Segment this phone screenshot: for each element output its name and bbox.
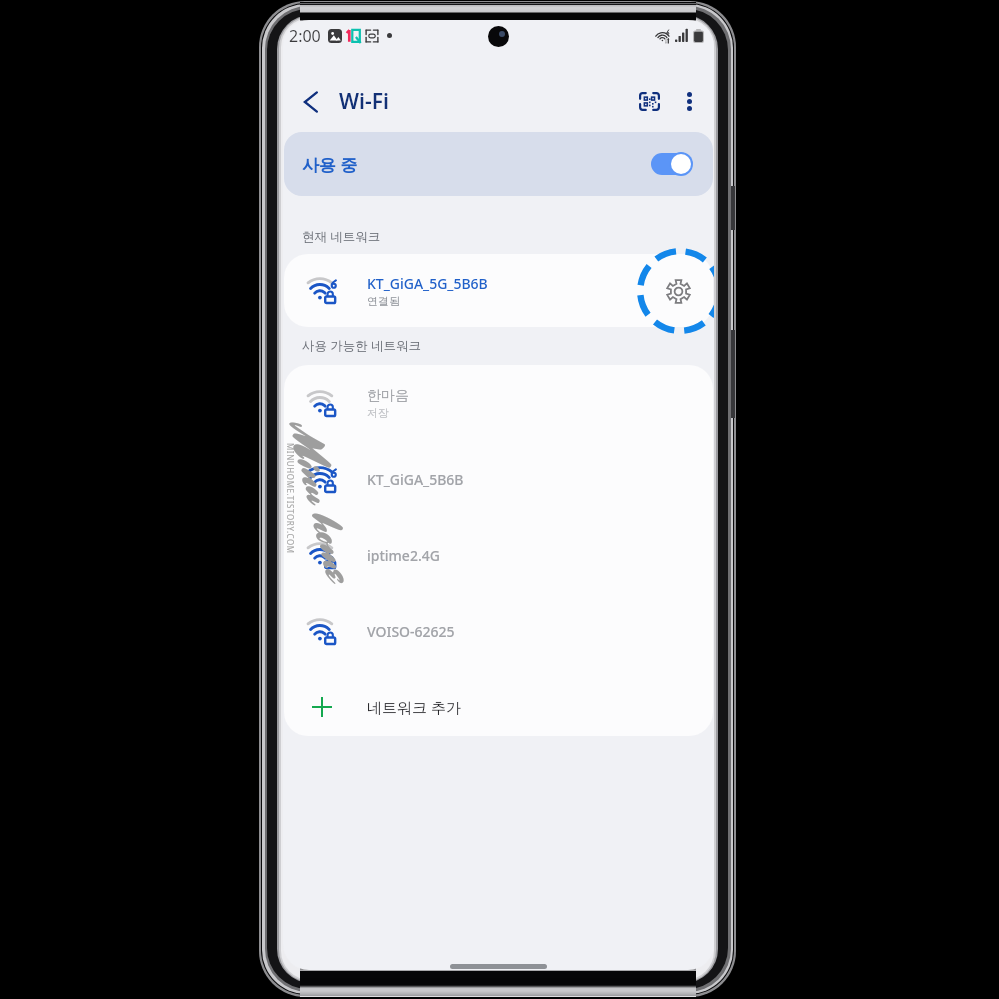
button[interactable]: More options: [671, 79, 707, 123]
staticText: 연결됨: [367, 294, 400, 308]
staticText: Minu home: [283, 418, 366, 586]
button[interactable]: Network settings: [656, 269, 700, 313]
button[interactable]: iptime2.4G: [284, 517, 713, 593]
staticText: 네트워크 추가: [367, 697, 461, 717]
staticText: iptime2.4G: [367, 546, 440, 565]
button[interactable]: 사용 중: [284, 132, 713, 196]
staticText: 저장: [367, 406, 389, 420]
staticText: 사용 중: [302, 153, 358, 176]
staticText: 사용 가능한 네트워크: [302, 337, 422, 354]
staticText: VOISO-62625: [367, 622, 455, 641]
button[interactable]: KT_GiGA_5G_5B6B: [284, 254, 713, 327]
staticText: 2:00: [289, 25, 321, 47]
staticText: Wi-Fi: [339, 87, 389, 116]
button[interactable]: 한마음: [284, 365, 713, 441]
staticText: MINUHOME.TISTORY.COM: [285, 443, 296, 554]
button[interactable]: Scan QR code: [627, 79, 671, 123]
staticText: 현재 네트워크: [302, 228, 381, 245]
staticText: KT_GiGA_5G_5B6B: [367, 274, 488, 293]
button[interactable]: VOISO-62625: [284, 593, 713, 669]
button[interactable]: KT_GiGA_5B6B: [284, 441, 713, 517]
staticText: 한마음: [367, 387, 409, 405]
button[interactable]: Back: [289, 80, 332, 123]
button[interactable]: 네트워크 추가: [284, 669, 713, 736]
staticText: KT_GiGA_5B6B: [367, 470, 464, 489]
